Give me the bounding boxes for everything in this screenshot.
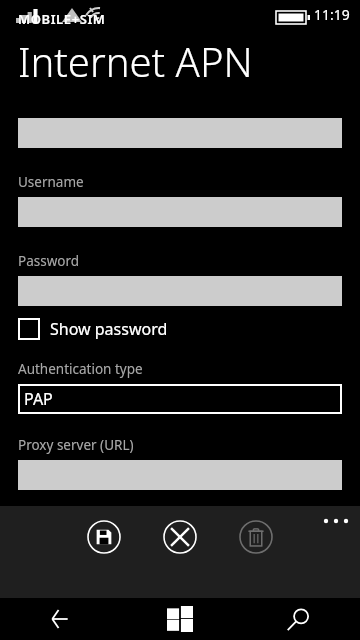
- button[interactable]: Delete: [233, 514, 279, 560]
- staticText: Authentication type: [18, 360, 143, 378]
- staticText: Username: [18, 173, 84, 191]
- staticText: Internet APN: [18, 34, 253, 88]
- button[interactable]: Save: [81, 514, 127, 560]
- staticText: Password: [18, 252, 80, 270]
- staticText: Proxy server (URL): [18, 436, 134, 454]
- staticText: 11:19: [314, 5, 350, 24]
- button[interactable]: Back: [0, 598, 120, 640]
- button[interactable]: PAP: [18, 384, 342, 414]
- button[interactable]: More options: [316, 506, 360, 534]
- button[interactable]: Cancel: [157, 514, 203, 560]
- staticText: PAP: [24, 388, 53, 410]
- staticText: Show password: [50, 318, 168, 340]
- button[interactable]: Start: [120, 598, 240, 640]
- button[interactable]: Search: [240, 598, 360, 640]
- staticText: MOBILE+SIM: [18, 10, 106, 28]
- button[interactable]: Show password: [18, 318, 168, 340]
